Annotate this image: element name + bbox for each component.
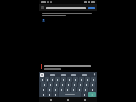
button[interactable]: Key — [40, 87, 46, 92]
button[interactable]: Home — [63, 97, 73, 102]
button[interactable]: Keyboard settings — [40, 73, 44, 77]
button[interactable]: Send — [88, 92, 96, 97]
button[interactable]: Key — [89, 87, 96, 92]
button[interactable]: Key — [59, 87, 64, 92]
button[interactable] — [71, 74, 76, 76]
button[interactable]: Key — [54, 82, 59, 87]
button[interactable]: Back — [46, 97, 56, 102]
button[interactable] — [39, 64, 97, 72]
button[interactable]: Key — [78, 82, 83, 87]
button[interactable]: Attachment — [42, 19, 45, 22]
button[interactable]: Key — [85, 77, 90, 82]
button[interactable]: Key — [73, 77, 78, 82]
button[interactable]: Key — [53, 92, 58, 97]
button[interactable]: Key — [91, 77, 96, 82]
button[interactable]: Key — [66, 82, 71, 87]
button[interactable]: Key — [50, 77, 54, 82]
button[interactable] — [50, 74, 55, 76]
button[interactable]: Key — [72, 82, 77, 87]
button[interactable]: Key — [79, 77, 84, 82]
button[interactable]: Key — [40, 92, 46, 97]
button[interactable]: Space — [59, 92, 81, 97]
button[interactable] — [61, 74, 66, 76]
button[interactable]: Action link — [88, 7, 95, 9]
button[interactable]: Action link — [39, 4, 97, 11]
button[interactable]: Recents — [80, 97, 90, 102]
button[interactable]: Key — [47, 92, 52, 97]
button[interactable]: Key — [90, 82, 95, 87]
button[interactable]: Key — [40, 77, 44, 82]
button[interactable]: Key — [82, 92, 87, 97]
button[interactable]: Key — [77, 87, 82, 92]
button[interactable]: Key — [65, 87, 70, 92]
button[interactable]: Key — [71, 87, 76, 92]
button[interactable]: Key — [55, 77, 60, 82]
button[interactable]: Key — [83, 87, 88, 92]
button[interactable] — [82, 74, 87, 76]
button[interactable]: Key — [61, 77, 66, 82]
button[interactable]: Key — [48, 82, 53, 87]
button[interactable]: Key — [84, 82, 89, 87]
button[interactable]: Key — [67, 77, 72, 82]
button[interactable]: Key — [60, 82, 65, 87]
button[interactable]: Key — [47, 87, 52, 92]
button[interactable]: Key — [53, 87, 58, 92]
button[interactable]: Key — [41, 82, 47, 87]
button[interactable]: Voice input — [93, 73, 96, 76]
button[interactable]: Key — [45, 77, 49, 82]
